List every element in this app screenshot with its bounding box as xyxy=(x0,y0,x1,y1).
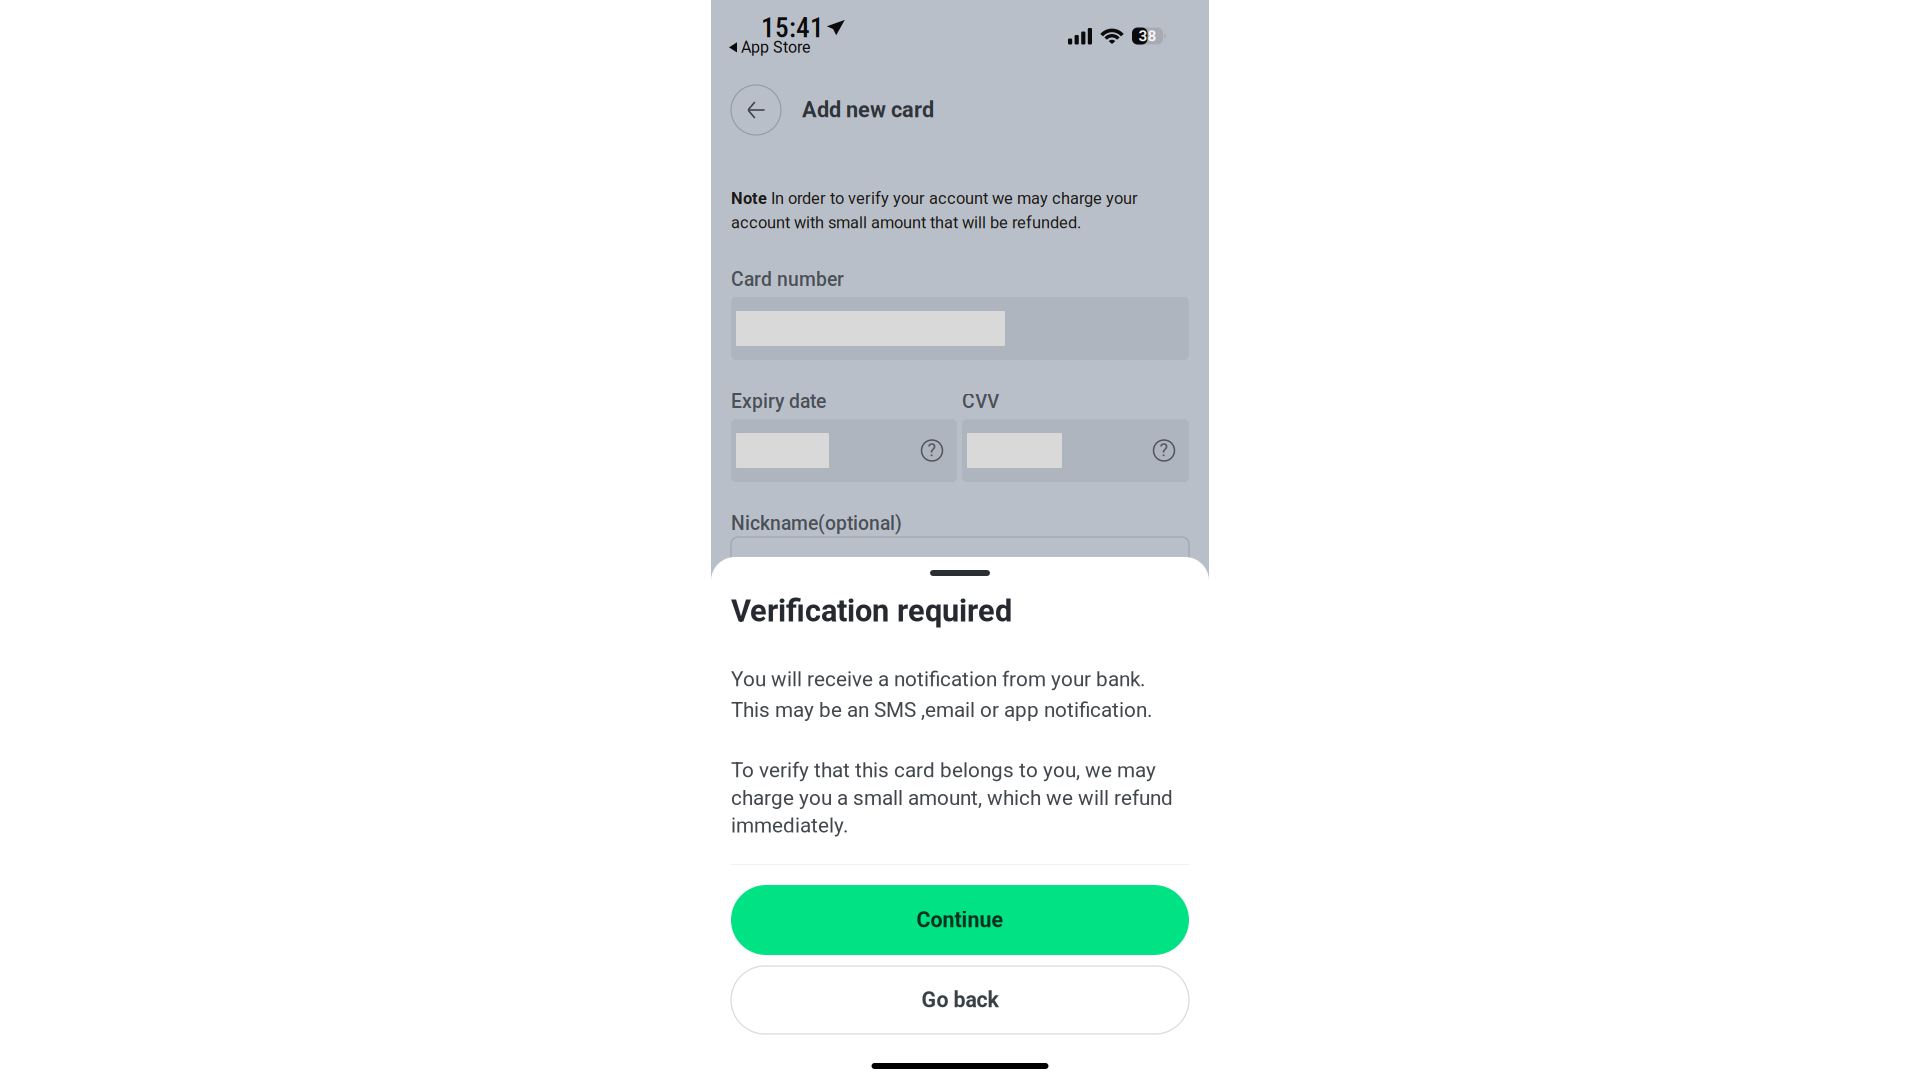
staticText: To verify that this card belongs to you,… xyxy=(731,758,1173,838)
staticText: Note In order to verify your account we … xyxy=(731,189,1138,232)
staticText: Continue xyxy=(916,907,1003,932)
staticText: Verification required xyxy=(731,593,1012,629)
button[interactable]: App Store xyxy=(729,38,810,57)
staticText: Add new card xyxy=(802,97,934,122)
staticText: Nickname(optional) xyxy=(731,512,902,535)
button[interactable]: CVV help xyxy=(1153,439,1175,461)
staticText: Expiry date xyxy=(731,390,826,413)
button[interactable]: Go back xyxy=(731,966,1189,1034)
button[interactable]: Expiry date help xyxy=(921,439,943,461)
staticText: Go back xyxy=(921,987,998,1012)
staticText: App Store xyxy=(741,38,810,57)
staticText: ? xyxy=(1159,439,1168,461)
staticText: 38 xyxy=(1138,27,1156,45)
staticText: You will receive a notification from you… xyxy=(731,667,1152,722)
staticText: CVV xyxy=(962,390,999,413)
staticText: 15:41 xyxy=(761,12,824,44)
button[interactable]: Continue xyxy=(731,885,1189,955)
staticText: Card number xyxy=(731,268,844,291)
staticText: ? xyxy=(927,439,936,461)
button[interactable]: Back xyxy=(731,85,781,135)
